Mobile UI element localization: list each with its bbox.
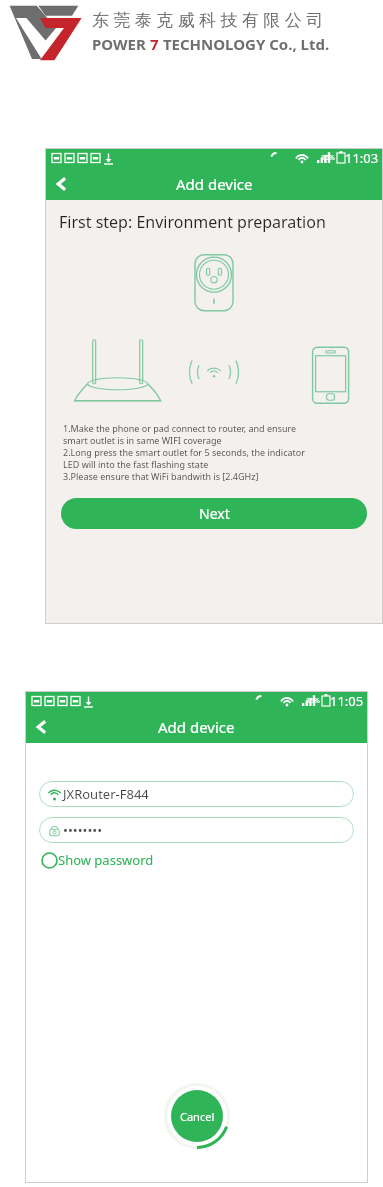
button[interactable]: Show password bbox=[41, 851, 154, 869]
staticText: 11:05 bbox=[330, 692, 364, 710]
staticText: Cancel bbox=[180, 1109, 215, 1124]
staticText: smart outlet is in same WIFI coverage bbox=[63, 434, 222, 446]
staticText: •••••••• bbox=[63, 821, 103, 839]
staticText: Show password bbox=[58, 851, 154, 869]
staticText: 1.Make the phone or pad connect to route… bbox=[63, 422, 297, 434]
button[interactable]: •••••••• bbox=[39, 817, 354, 843]
staticText: 7 bbox=[150, 34, 159, 54]
button[interactable]: Next bbox=[61, 498, 367, 529]
staticText: 15% bbox=[306, 696, 320, 706]
button[interactable]: Back bbox=[45, 168, 79, 200]
button[interactable]: Cancel bbox=[164, 1083, 230, 1149]
button[interactable]: Back bbox=[25, 711, 59, 743]
staticText: LED will into the fast flashing state bbox=[63, 458, 209, 470]
staticText: 2.Long press the smart outlet for 5 seco… bbox=[63, 446, 305, 458]
staticText: TECHNOLOGY Co., Ltd. bbox=[159, 34, 330, 54]
staticText: Add device bbox=[158, 717, 235, 737]
staticText: Next bbox=[199, 504, 230, 523]
staticText: 15% bbox=[321, 153, 335, 163]
staticText: JXRouter-F844 bbox=[63, 785, 149, 803]
staticText: 3.Please ensure that WiFi bandwith is [2… bbox=[63, 470, 259, 482]
staticText: 东 莞 泰 克 威 科 技 有 限 公 司 bbox=[92, 8, 324, 31]
staticText: Add device bbox=[176, 174, 253, 194]
button[interactable]: JXRouter-F844 bbox=[39, 781, 354, 807]
staticText: 11:03 bbox=[345, 149, 379, 167]
staticText: POWER bbox=[92, 34, 150, 54]
staticText: First step: Environment preparation bbox=[59, 211, 326, 233]
